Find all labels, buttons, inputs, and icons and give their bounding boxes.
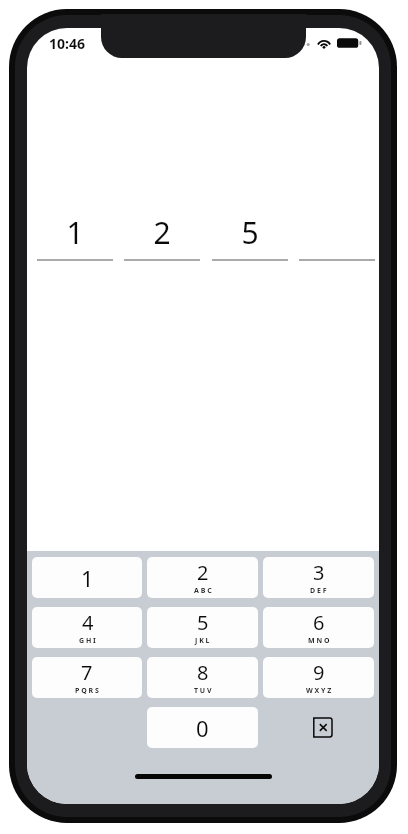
- button[interactable]: 4: [32, 607, 142, 648]
- button[interactable]: 1: [37, 210, 113, 261]
- button[interactable]: 2: [147, 557, 258, 598]
- staticText: 9: [313, 659, 325, 686]
- button[interactable]: 5: [147, 607, 258, 648]
- staticText: 8: [197, 659, 209, 686]
- staticText: 10:46: [49, 34, 85, 53]
- button[interactable]: Delete: [263, 707, 374, 748]
- staticText: T U V: [194, 686, 212, 696]
- staticText: 3: [313, 559, 325, 586]
- button[interactable]: 2: [124, 210, 200, 261]
- button[interactable]: 3: [263, 557, 374, 598]
- staticText: J K L: [195, 636, 210, 646]
- staticText: 2: [153, 212, 171, 253]
- staticText: P Q R S: [75, 686, 99, 696]
- button[interactable]: 7: [32, 657, 142, 698]
- staticText: 7: [81, 659, 93, 686]
- button[interactable]: 6: [263, 607, 374, 648]
- button[interactable]: [299, 210, 375, 261]
- staticText: A B C: [194, 586, 212, 596]
- staticText: G H I: [79, 636, 96, 646]
- staticText: 6: [313, 609, 325, 636]
- staticText: 0: [196, 713, 209, 743]
- button[interactable]: 9: [263, 657, 374, 698]
- button[interactable]: 8: [147, 657, 258, 698]
- button[interactable]: 0: [147, 707, 258, 748]
- staticText: 5: [197, 609, 209, 636]
- staticText: M N O: [308, 636, 330, 646]
- staticText: 2: [197, 559, 209, 586]
- staticText: 4: [82, 609, 94, 636]
- button[interactable]: 1: [32, 557, 142, 598]
- staticText: W X Y Z: [306, 686, 332, 696]
- staticText: 1: [81, 563, 94, 593]
- staticText: D E F: [310, 586, 327, 596]
- staticText: 1: [66, 212, 84, 253]
- button[interactable]: 5: [212, 210, 288, 261]
- staticText: 5: [241, 212, 259, 253]
